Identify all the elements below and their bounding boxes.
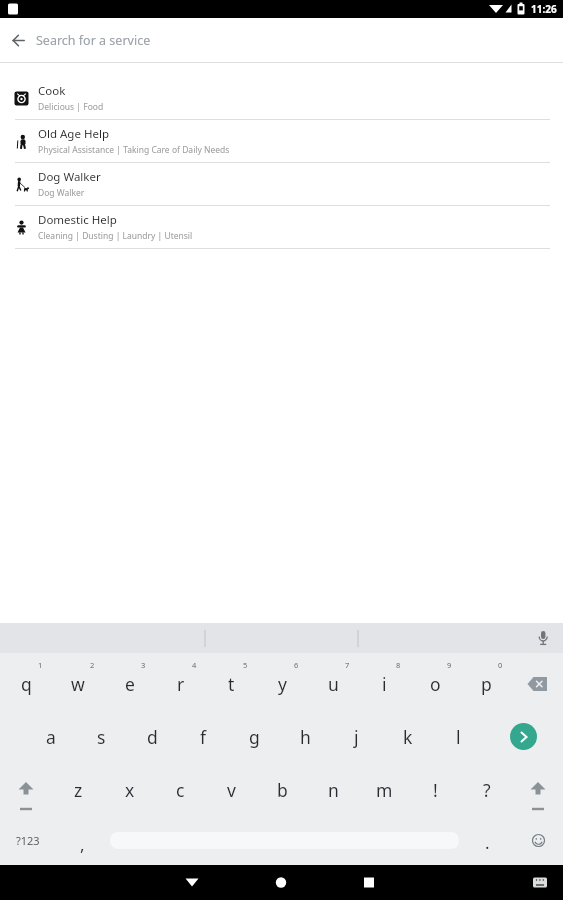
- button[interactable]: w: [52, 657, 104, 710]
- staticText: z: [74, 778, 83, 802]
- staticText: 0: [498, 660, 503, 670]
- button[interactable]: [512, 657, 563, 710]
- button[interactable]: e: [104, 657, 155, 710]
- button[interactable]: [375, 865, 563, 900]
- staticText: r: [177, 672, 185, 696]
- button[interactable]: d: [127, 710, 178, 763]
- staticText: 7: [345, 660, 350, 670]
- button[interactable]: Old Age Help: [0, 120, 563, 163]
- staticText: 4: [192, 660, 197, 670]
- staticText: ?: [483, 778, 491, 802]
- staticText: 5: [243, 660, 248, 670]
- staticText: g: [249, 725, 260, 749]
- staticText: !: [433, 778, 438, 802]
- staticText: q: [21, 672, 32, 696]
- button[interactable]: q: [0, 657, 52, 710]
- button[interactable]: .: [461, 816, 513, 865]
- button[interactable]: ?123: [0, 816, 56, 865]
- button[interactable]: Dog Walker: [0, 163, 563, 206]
- staticText: n: [328, 778, 339, 802]
- staticText: u: [328, 672, 339, 696]
- staticText: .: [485, 831, 490, 854]
- button[interactable]: j: [331, 710, 382, 763]
- staticText: 6: [294, 660, 299, 670]
- staticText: y: [278, 672, 287, 696]
- staticText: m: [376, 778, 393, 802]
- staticText: f: [200, 725, 207, 749]
- staticText: o: [430, 672, 441, 696]
- staticText: e: [125, 672, 135, 696]
- staticText: ,: [80, 833, 85, 856]
- button[interactable]: g: [229, 710, 280, 763]
- button[interactable]: t: [206, 657, 257, 710]
- staticText: c: [176, 778, 185, 802]
- button[interactable]: [512, 763, 563, 816]
- button[interactable]: n: [308, 763, 359, 816]
- button[interactable]: [513, 816, 563, 865]
- button[interactable]: a: [25, 710, 76, 763]
- button[interactable]: !: [410, 763, 461, 816]
- staticText: h: [300, 725, 311, 749]
- staticText: Cook: [38, 83, 66, 99]
- staticText: 9: [447, 660, 452, 670]
- staticText: Cleaning | Dusting | Laundry | Utensil: [38, 230, 193, 242]
- staticText: 11:26: [531, 2, 557, 16]
- staticText: d: [147, 725, 158, 749]
- button[interactable]: x: [104, 763, 155, 816]
- button[interactable]: y: [257, 657, 308, 710]
- button[interactable]: [484, 710, 563, 763]
- staticText: p: [481, 672, 492, 696]
- button[interactable]: ,: [56, 816, 108, 865]
- staticText: Physical Assistance | Taking Care of Dai…: [38, 144, 230, 156]
- button[interactable]: v: [206, 763, 257, 816]
- staticText: Delicious | Food: [38, 101, 104, 113]
- staticText: l: [456, 725, 461, 749]
- staticText: a: [46, 725, 56, 749]
- button[interactable]: l: [433, 710, 484, 763]
- button[interactable]: [12, 34, 25, 47]
- button[interactable]: [0, 763, 52, 816]
- button[interactable]: p: [461, 657, 512, 710]
- button[interactable]: h: [280, 710, 331, 763]
- button[interactable]: Search for a service: [0, 18, 563, 62]
- staticText: w: [71, 672, 85, 696]
- button[interactable]: [108, 816, 461, 865]
- staticText: v: [227, 778, 236, 802]
- button[interactable]: ?: [461, 763, 512, 816]
- button[interactable]: k: [382, 710, 433, 763]
- staticText: t: [228, 672, 235, 696]
- staticText: j: [354, 725, 359, 749]
- button[interactable]: c: [155, 763, 206, 816]
- button[interactable]: [187, 865, 375, 900]
- button[interactable]: m: [359, 763, 410, 816]
- button[interactable]: Cook: [0, 77, 563, 120]
- button[interactable]: Domestic Help: [0, 206, 563, 249]
- staticText: Old Age Help: [38, 126, 109, 142]
- staticText: k: [403, 725, 413, 749]
- staticText: ?123: [16, 833, 40, 848]
- button[interactable]: o: [410, 657, 461, 710]
- staticText: Dog Walker: [38, 187, 85, 199]
- staticText: Domestic Help: [38, 212, 117, 228]
- staticText: Search for a service: [36, 32, 151, 49]
- staticText: i: [382, 672, 387, 696]
- button[interactable]: i: [359, 657, 410, 710]
- button[interactable]: u: [308, 657, 359, 710]
- staticText: 3: [141, 660, 146, 670]
- staticText: 2: [90, 660, 95, 670]
- staticText: 1: [38, 660, 43, 670]
- button[interactable]: b: [257, 763, 308, 816]
- button[interactable]: r: [155, 657, 206, 710]
- staticText: 8: [396, 660, 401, 670]
- button[interactable]: f: [178, 710, 229, 763]
- staticText: Dog Walker: [38, 169, 101, 185]
- staticText: s: [97, 725, 106, 749]
- button[interactable]: s: [76, 710, 127, 763]
- staticText: b: [277, 778, 288, 802]
- staticText: x: [125, 778, 135, 802]
- button[interactable]: z: [52, 763, 104, 816]
